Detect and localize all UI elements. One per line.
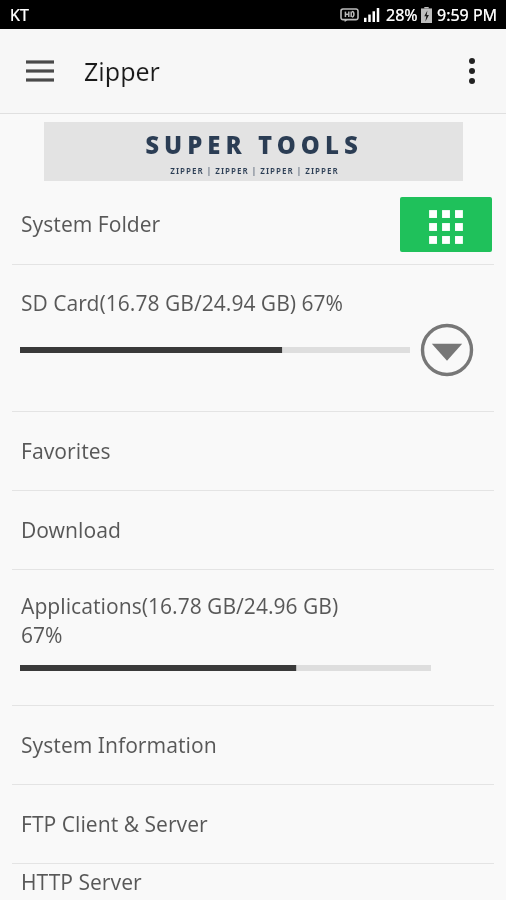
button[interactable]: Applications(16.78 GB/24.96 GB) xyxy=(0,570,506,705)
button[interactable]: Expand SD card xyxy=(418,321,476,379)
staticText: FTP Client & Server xyxy=(21,810,208,839)
staticText: 28% xyxy=(386,4,418,26)
button[interactable]: System Information xyxy=(0,706,506,784)
button[interactable]: SD Card(16.78 GB/24.94 GB) 67% xyxy=(0,265,506,411)
staticText: KT xyxy=(10,4,29,26)
staticText: Applications(16.78 GB/24.96 GB) xyxy=(21,592,339,621)
staticText: System Folder xyxy=(21,210,161,239)
button[interactable]: More options xyxy=(446,45,498,97)
button[interactable]: App grid xyxy=(400,197,492,252)
staticText: HTTP Server xyxy=(21,868,142,897)
staticText: 9:59 PM xyxy=(437,4,498,26)
staticText: SUPER TOOLS xyxy=(145,128,363,161)
staticText: SD Card(16.78 GB/24.94 GB) 67% xyxy=(21,289,344,318)
staticText: ZIPPER | ZIPPER | ZIPPER | ZIPPER xyxy=(170,165,339,176)
button[interactable]: HTTP Server xyxy=(0,864,506,900)
button[interactable]: Favorites xyxy=(0,412,506,490)
staticText: Download xyxy=(21,516,121,545)
staticText: 67% xyxy=(21,621,63,650)
staticText: Favorites xyxy=(21,437,111,466)
button[interactable]: SUPER TOOLS xyxy=(44,122,463,181)
staticText: System Information xyxy=(21,731,217,760)
staticText: Zipper xyxy=(84,54,160,88)
button[interactable]: Open navigation drawer xyxy=(12,43,68,99)
button[interactable]: FTP Client & Server xyxy=(0,785,506,863)
button[interactable]: System Folder xyxy=(0,184,506,264)
button[interactable]: Download xyxy=(0,491,506,569)
